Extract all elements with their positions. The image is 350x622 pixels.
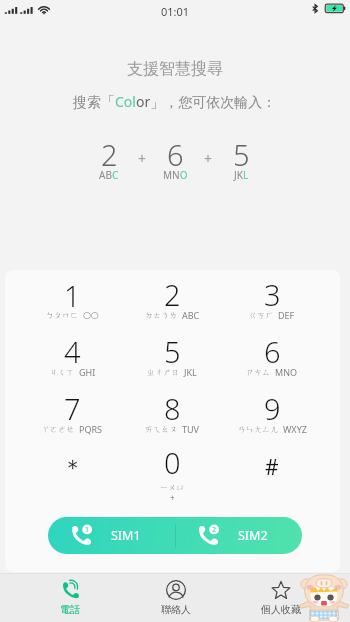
button[interactable]: 9 [222, 386, 322, 443]
staticText: ㄗㄘㄙ [246, 367, 271, 377]
button[interactable]: 0 [122, 443, 222, 500]
staticText: TUV [182, 423, 199, 435]
staticText: ㄚㄛㄜㄝ [42, 424, 75, 434]
staticText: ㄢㄣㄤㄥㄦ [238, 424, 279, 434]
staticText: 5 [233, 135, 250, 174]
staticText: 8 [164, 389, 181, 428]
staticText: 2 [164, 275, 181, 314]
staticText: 2 [212, 525, 217, 535]
staticText: 6 [264, 332, 281, 371]
staticText: DEF [278, 309, 295, 321]
staticText: 5 [164, 332, 181, 371]
staticText: ㄓㄔㄕㄖ [147, 367, 180, 377]
staticText: JKL [234, 168, 249, 182]
staticText: + [138, 149, 147, 168]
staticText: MNO [275, 366, 298, 378]
button[interactable]: ＊ [23, 443, 122, 500]
button[interactable]: 1 [48, 517, 175, 554]
staticText: 搜索「Color」，您可依次輸入： [73, 92, 277, 111]
staticText: SIM2 [238, 527, 268, 544]
button[interactable]: 5 [122, 329, 222, 386]
staticText: ＊ [62, 454, 84, 482]
staticText: ABC [99, 168, 119, 182]
staticText: # [265, 453, 279, 482]
button[interactable]: 8 [122, 386, 222, 443]
staticText: ㄉㄊㄋㄌ [145, 310, 178, 320]
staticText: ㄞㄟㄠㄡ [145, 424, 178, 434]
staticText: MNO [163, 168, 188, 182]
staticText: JKL [184, 366, 197, 378]
staticText: 1 [64, 276, 81, 315]
staticText: SIM1 [111, 527, 141, 544]
staticText: ㄐㄑㄒ [50, 367, 75, 377]
button[interactable]: # [222, 443, 322, 500]
staticText: 6 [167, 135, 184, 174]
staticText: PQRS [79, 423, 103, 435]
staticText: 個人收藏 [261, 603, 301, 616]
staticText: 7 [64, 389, 81, 428]
staticText: ㄧㄨㄩ [160, 482, 185, 492]
button[interactable]: 4 [23, 329, 122, 386]
button[interactable]: 3 [222, 272, 322, 329]
staticText: 3 [264, 275, 281, 314]
staticText: 0 [164, 443, 181, 482]
staticText: 9 [264, 389, 281, 428]
staticText: ○○ [83, 310, 99, 320]
staticText: 2 [101, 135, 118, 174]
staticText: GHI [79, 366, 96, 378]
button[interactable]: 聯絡人 [123, 574, 228, 622]
staticText: ㄅㄆㄇㄈ [46, 310, 79, 320]
button[interactable]: 個人收藏 [228, 574, 333, 622]
staticText: 支援智慧搜尋 [127, 59, 223, 79]
staticText: + [170, 492, 175, 500]
staticText: 4 [64, 332, 81, 371]
button[interactable]: 2 [175, 517, 302, 554]
button[interactable]: 6 [222, 329, 322, 386]
button[interactable]: 7 [23, 386, 122, 443]
staticText: ㄍㄎㄏ [249, 310, 274, 320]
staticText: 1 [85, 525, 90, 535]
staticText: 01:01 [161, 4, 190, 19]
staticText: 電話 [60, 603, 80, 616]
staticText: WXYZ [283, 423, 307, 435]
staticText: 聯絡人 [161, 603, 191, 616]
button[interactable]: 2 [122, 272, 222, 329]
button[interactable]: 電話 [17, 574, 123, 622]
button[interactable]: 1 [23, 272, 122, 329]
staticText: + [204, 149, 213, 168]
staticText: ABC [182, 309, 200, 321]
